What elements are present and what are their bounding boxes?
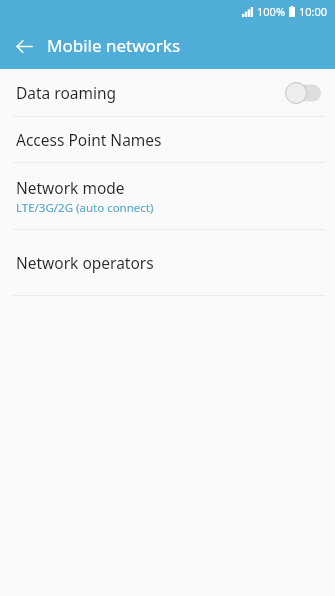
staticText: Network mode: [16, 177, 125, 198]
button[interactable]: Data roaming: [0, 69, 335, 116]
staticText: Access Point Names: [16, 129, 162, 150]
button[interactable]: Access Point Names: [0, 117, 335, 162]
button[interactable]: Network operators: [0, 230, 335, 295]
button[interactable]: [285, 82, 321, 104]
staticText: 10:00: [299, 4, 328, 19]
button[interactable]: Navigate up: [6, 28, 42, 64]
staticText: Data roaming: [16, 82, 117, 103]
button[interactable]: Network mode: [0, 163, 335, 229]
staticText: 100%: [257, 4, 286, 19]
staticText: LTE/3G/2G (auto connect): [16, 200, 154, 216]
staticText: Network operators: [16, 252, 154, 273]
staticText: Mobile networks: [47, 34, 181, 57]
